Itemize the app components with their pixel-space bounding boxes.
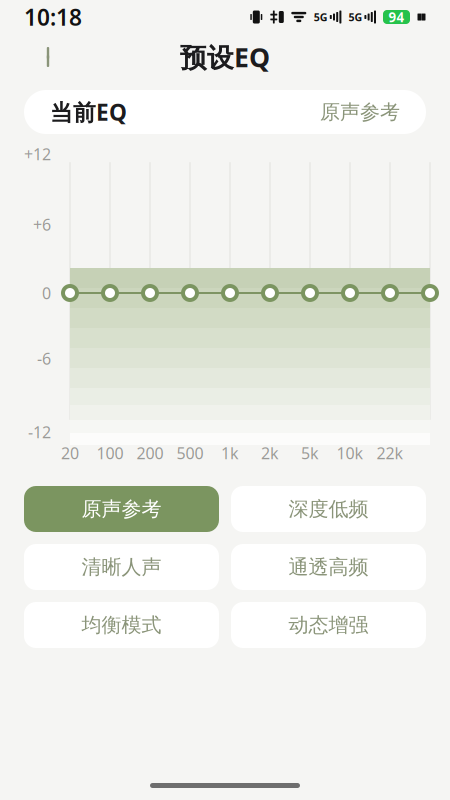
staticText: 94 — [388, 8, 404, 26]
staticText: 2k — [261, 442, 279, 464]
staticText: 预设EQ — [180, 39, 270, 75]
button[interactable]: 清晰人声 — [24, 544, 219, 590]
staticText: -6 — [37, 348, 51, 369]
staticText: 清晰人声 — [81, 555, 161, 579]
staticText: 通透高频 — [288, 555, 368, 579]
staticText: 1k — [221, 442, 239, 464]
staticText: 5G — [314, 10, 328, 24]
staticText: 500 — [176, 442, 203, 464]
button[interactable]: 原声参考 — [24, 486, 219, 532]
staticText: 10k — [336, 442, 363, 464]
staticText: 均衡模式 — [81, 613, 161, 637]
staticText: 20 — [61, 442, 79, 464]
staticText: 原声参考 — [81, 497, 161, 521]
staticText: 10:18 — [24, 2, 82, 32]
button[interactable]: 深度低频 — [231, 486, 426, 532]
staticText: 0 — [42, 282, 51, 304]
staticText: 100 — [96, 442, 123, 464]
staticText: +6 — [33, 214, 51, 235]
staticText: 5G — [348, 10, 362, 24]
staticText: 5k — [301, 442, 319, 464]
staticText: 200 — [136, 442, 163, 464]
staticText: 动态增强 — [288, 613, 368, 637]
button[interactable]: 通透高频 — [231, 544, 426, 590]
staticText: -12 — [28, 421, 51, 443]
staticText: 原声参考 — [320, 100, 400, 124]
button[interactable]: 均衡模式 — [24, 602, 219, 648]
button[interactable]: 返回 — [22, 36, 68, 78]
staticText: 当前EQ — [50, 97, 127, 127]
staticText: 22k — [376, 442, 403, 464]
staticText: +12 — [24, 143, 51, 165]
staticText: 深度低频 — [288, 497, 368, 521]
button[interactable]: 动态增强 — [231, 602, 426, 648]
